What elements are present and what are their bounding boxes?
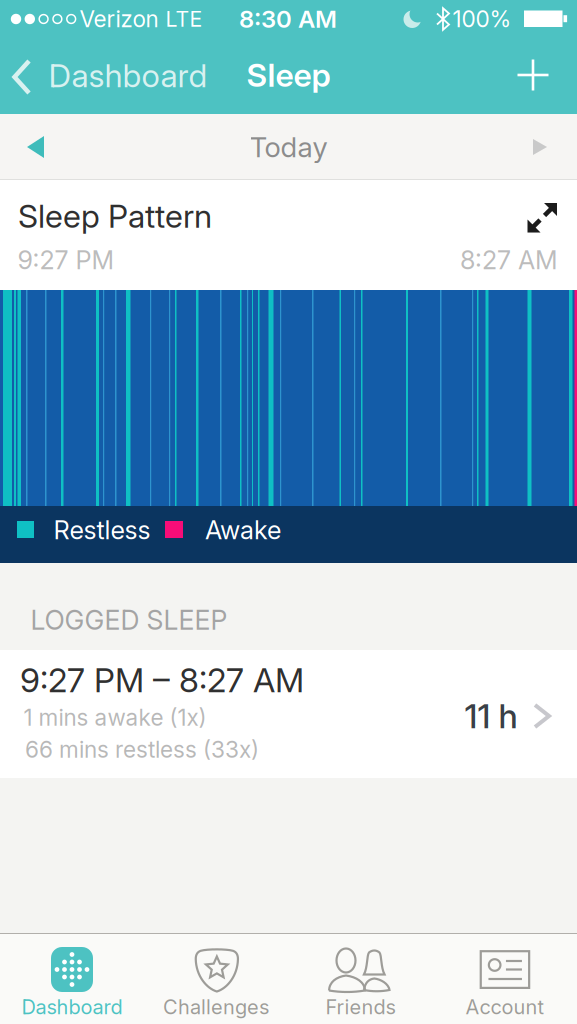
button[interactable]: 9:27 PM – 8:27 AM bbox=[0, 650, 577, 778]
staticText: Verizon bbox=[79, 6, 158, 32]
staticText: Account bbox=[465, 995, 544, 1019]
staticText: Restless bbox=[53, 515, 150, 545]
staticText: Challenges bbox=[163, 995, 269, 1019]
button[interactable]: Dashboard bbox=[0, 933, 144, 1024]
button[interactable]: Friends bbox=[288, 933, 433, 1024]
staticText: 1 mins awake (1x) bbox=[23, 704, 206, 731]
staticText: LTE bbox=[165, 6, 202, 32]
button[interactable]: Expand chart bbox=[527, 203, 557, 233]
button[interactable]: Challenges bbox=[144, 933, 288, 1024]
staticText: Sleep Pattern bbox=[18, 197, 212, 235]
staticText: LOGGED SLEEP bbox=[30, 604, 227, 636]
staticText: Dashboard bbox=[48, 57, 207, 94]
staticText: 9:27 PM bbox=[17, 245, 114, 275]
staticText: 8:27 AM bbox=[460, 245, 558, 275]
staticText: 11 h bbox=[464, 696, 517, 736]
button[interactable]: Dashboard bbox=[0, 38, 220, 114]
staticText: 8:30 AM bbox=[239, 5, 337, 33]
staticText: 100% bbox=[452, 6, 511, 32]
staticText: Sleep bbox=[246, 56, 330, 94]
staticText: 9:27 PM – 8:27 AM bbox=[20, 660, 304, 700]
staticText: Awake bbox=[205, 515, 281, 545]
button[interactable]: Next day bbox=[533, 139, 547, 155]
staticText: Friends bbox=[325, 995, 395, 1019]
button[interactable]: Account bbox=[433, 933, 577, 1024]
button[interactable]: Previous day bbox=[27, 136, 44, 158]
staticText: Dashboard bbox=[21, 995, 122, 1019]
staticText: 66 mins restless (33x) bbox=[25, 736, 259, 763]
staticText: Today bbox=[249, 130, 327, 163]
button[interactable]: Add bbox=[517, 59, 548, 90]
